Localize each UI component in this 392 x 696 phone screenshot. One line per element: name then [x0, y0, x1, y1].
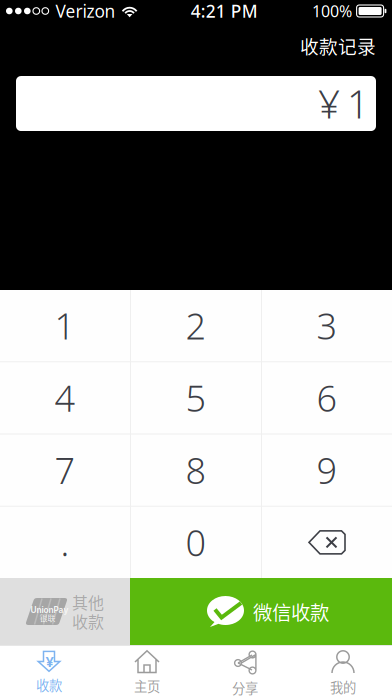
button[interactable]: 3 [262, 290, 392, 361]
staticText: 1 [54, 302, 75, 349]
staticText: Verizon [56, 0, 116, 22]
staticText: UnionPay [30, 605, 68, 615]
staticText: 主页 [134, 676, 160, 695]
button[interactable]: UnionPay [0, 578, 130, 645]
button[interactable]: 1 [0, 290, 130, 361]
staticText: 5 [185, 374, 206, 422]
staticText: 收款 [36, 675, 62, 694]
button[interactable]: 4 [0, 362, 130, 433]
button[interactable]: 9 [262, 434, 392, 506]
staticText: 9 [316, 446, 337, 494]
staticText: 收款记录 [300, 32, 376, 59]
staticText: 其他 [72, 590, 104, 613]
button[interactable]: . [0, 507, 130, 578]
button[interactable]: 我的 [294, 645, 392, 696]
staticText: ¥ [45, 651, 53, 671]
staticText: 6 [316, 374, 337, 422]
button[interactable]: 收款记录 [290, 28, 386, 63]
staticText: 银联 [39, 612, 55, 624]
staticText: 3 [316, 302, 337, 349]
button[interactable]: 7 [0, 434, 130, 506]
button[interactable]: 分享 [196, 645, 294, 696]
staticText: 4 [54, 374, 75, 422]
staticText: 我的 [330, 677, 356, 696]
button[interactable]: Delete [262, 507, 392, 578]
button[interactable]: 微信收款 [130, 578, 392, 645]
staticText: 分享 [232, 678, 258, 696]
staticText: 8 [185, 446, 206, 494]
staticText: 0 [185, 518, 206, 566]
staticText: . [60, 518, 69, 566]
staticText: 4:21 PM [191, 0, 258, 22]
staticText: 7 [54, 446, 75, 494]
button[interactable]: ¥ [0, 645, 98, 696]
button[interactable]: 8 [131, 434, 261, 506]
staticText: 收款 [72, 609, 104, 633]
button[interactable]: 5 [131, 362, 261, 433]
button[interactable]: 0 [131, 507, 261, 578]
staticText: 2 [185, 302, 206, 349]
staticText: 1 [347, 78, 369, 129]
button[interactable]: 2 [131, 290, 261, 361]
staticText: 微信收款 [253, 597, 329, 625]
button[interactable]: 6 [262, 362, 392, 433]
staticText: ¥ [318, 78, 340, 129]
button[interactable]: 主页 [98, 645, 196, 696]
staticText: 100% [312, 0, 352, 22]
